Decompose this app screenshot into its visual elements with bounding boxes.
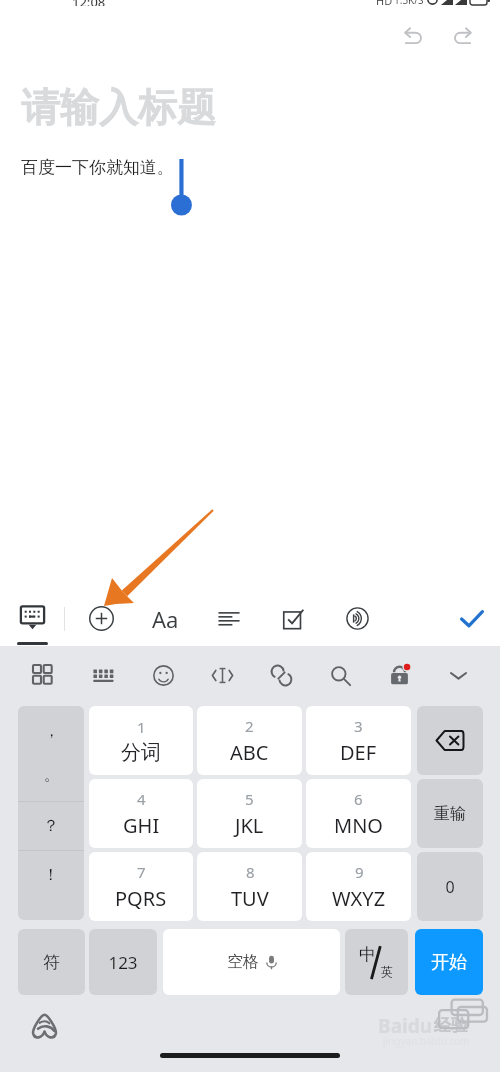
staticText: ！ <box>43 865 59 885</box>
staticText: 空格 <box>227 952 259 972</box>
staticText: ABC <box>230 739 269 766</box>
button[interactable]: Input method <box>31 1012 58 1039</box>
staticText: PQRS <box>115 885 167 912</box>
staticText: DEF <box>340 739 377 766</box>
staticText: 重输 <box>434 804 466 824</box>
button[interactable]: ， <box>18 706 84 801</box>
button[interactable]: Apps <box>13 646 73 704</box>
staticText: 1 <box>137 717 146 737</box>
button[interactable]: 6 <box>306 779 411 848</box>
button[interactable]: Collapse keyboard <box>429 646 488 704</box>
button[interactable]: Clipboard <box>252 646 311 704</box>
button[interactable]: Backspace <box>417 706 483 775</box>
staticText: 4 <box>137 789 146 809</box>
button[interactable]: 8 <box>197 852 302 921</box>
staticText: 7 <box>137 862 146 882</box>
button[interactable]: 4 <box>89 779 193 848</box>
button[interactable]: Chinese English toggle <box>345 929 408 995</box>
button[interactable]: 符 <box>18 929 85 995</box>
button[interactable]: ！ <box>18 851 84 920</box>
staticText: HD <box>376 0 393 6</box>
staticText: 1.3K/S <box>394 0 424 6</box>
staticText: WXYZ <box>332 885 386 912</box>
staticText: 符 <box>43 952 60 973</box>
button[interactable]: 重输 <box>417 779 483 848</box>
button[interactable]: Voice input <box>325 591 389 646</box>
button[interactable]: Keyboard <box>0 591 64 646</box>
staticText: 百度一下你就知道。 <box>21 157 174 178</box>
staticText: ， <box>44 722 59 741</box>
staticText: 请输入标题 <box>21 83 216 132</box>
staticText: 5 <box>245 789 254 809</box>
staticText: 开始 <box>431 951 467 974</box>
button[interactable]: Privacy <box>370 646 429 704</box>
staticText: MNO <box>334 812 383 839</box>
staticText: JKL <box>235 812 264 839</box>
button[interactable]: Checklist <box>261 591 325 646</box>
staticText: GHI <box>123 812 160 839</box>
staticText: 12:08 <box>72 0 106 6</box>
button[interactable]: Done <box>444 591 500 646</box>
staticText: 123 <box>108 951 138 974</box>
button[interactable]: Add <box>69 591 133 646</box>
button[interactable]: ？ <box>18 802 84 850</box>
button[interactable]: 5 <box>197 779 302 848</box>
button[interactable]: 开始 <box>415 929 483 995</box>
staticText: ？ <box>43 816 59 836</box>
button[interactable]: 1 <box>89 706 193 775</box>
staticText: 8 <box>246 862 255 882</box>
button[interactable]: Emoji <box>133 646 193 704</box>
button[interactable]: Move cursor <box>193 646 252 704</box>
button[interactable]: 空格 <box>163 929 340 995</box>
staticText: 0 <box>445 876 455 898</box>
button[interactable]: 3 <box>306 706 411 775</box>
staticText: 中 <box>359 944 376 965</box>
button[interactable]: 123 <box>89 929 157 995</box>
button[interactable]: Redo <box>439 16 485 56</box>
staticText: Aa <box>152 604 179 634</box>
staticText: 英 <box>381 964 393 979</box>
staticText: 2 <box>245 716 254 736</box>
button[interactable]: 7 <box>89 852 193 921</box>
staticText: 9 <box>355 862 364 882</box>
button[interactable]: Search <box>311 646 370 704</box>
staticText: TUV <box>231 885 269 912</box>
staticText: 。 <box>44 766 59 785</box>
button[interactable]: Undo <box>390 16 436 56</box>
button[interactable]: 9 <box>306 852 411 921</box>
staticText: 经验 <box>434 1015 468 1036</box>
staticText: 分词 <box>121 740 161 765</box>
button[interactable]: Keyboard layout <box>73 646 133 704</box>
button[interactable]: 0 <box>417 852 483 921</box>
staticText: 6 <box>354 789 363 809</box>
button[interactable]: Alignment <box>197 591 261 646</box>
staticText: Baidu <box>378 1013 433 1039</box>
button[interactable]: 2 <box>197 706 302 775</box>
button[interactable]: Text style <box>133 591 197 646</box>
staticText: 3 <box>354 716 363 736</box>
